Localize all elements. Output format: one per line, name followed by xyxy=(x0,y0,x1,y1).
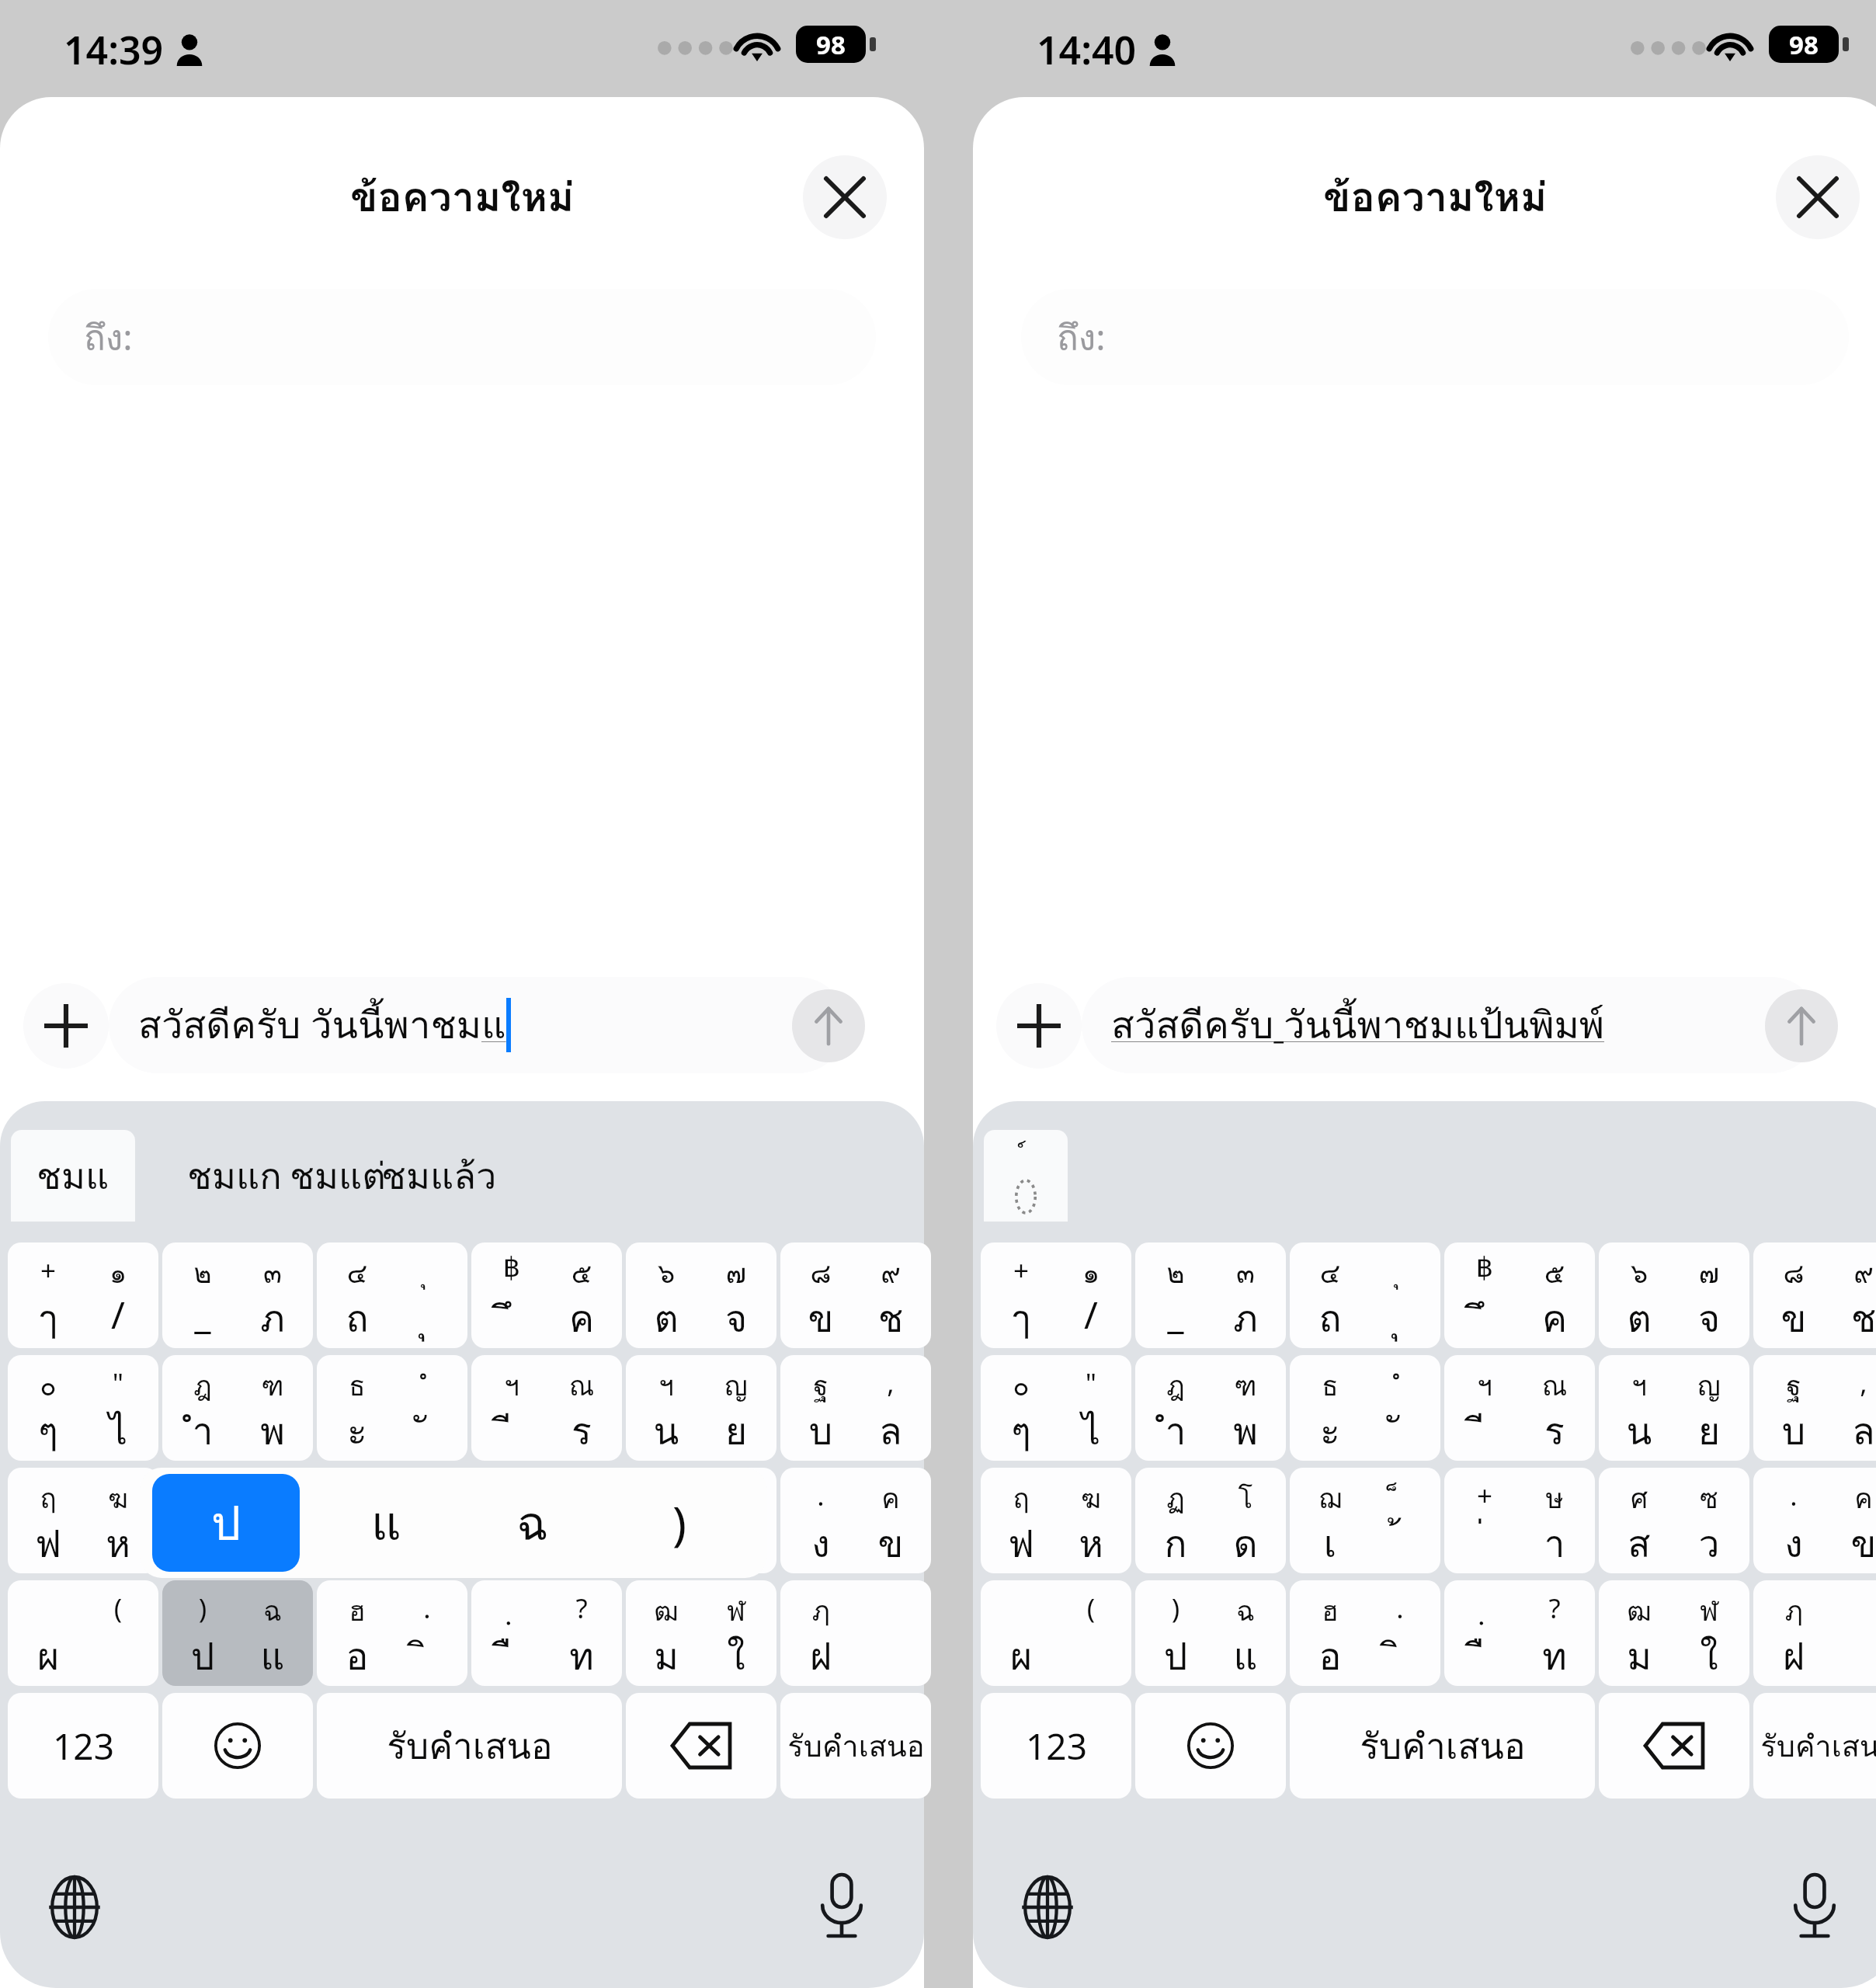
staticText: ๓ xyxy=(1217,1252,1274,1295)
button[interactable]: ฐ xyxy=(1753,1355,1876,1461)
button[interactable]: ์ xyxy=(984,1130,1068,1222)
button[interactable] xyxy=(162,1468,313,1573)
button[interactable]: ๘ xyxy=(1753,1242,1876,1348)
button[interactable]: Add attachment xyxy=(23,983,109,1069)
button[interactable]: Emoji xyxy=(1135,1693,1286,1799)
staticText: า xyxy=(1526,1514,1583,1573)
button[interactable]: รับคำเสนอ xyxy=(317,1693,622,1799)
button[interactable]: ๘ xyxy=(780,1242,931,1348)
button[interactable]: ฤ xyxy=(981,1468,1131,1573)
button[interactable]: ฐ xyxy=(780,1355,931,1461)
button[interactable]: ฎ xyxy=(1135,1355,1286,1461)
button[interactable]: ฯ xyxy=(626,1355,776,1461)
button[interactable]: ฿ xyxy=(1444,1242,1595,1348)
button[interactable]: ๐ xyxy=(981,1355,1131,1461)
button[interactable] xyxy=(471,1468,622,1573)
button[interactable]: + xyxy=(981,1242,1131,1348)
staticText: ด xyxy=(1217,1514,1274,1573)
staticText: ๓ xyxy=(244,1252,301,1295)
button[interactable]: ) xyxy=(162,1580,313,1686)
button[interactable]: ๔ xyxy=(317,1242,467,1348)
staticText: 123 xyxy=(1026,1722,1087,1771)
button[interactable]: ๖ xyxy=(1599,1242,1749,1348)
button[interactable]: ฯ xyxy=(1599,1355,1749,1461)
button[interactable]: ฦ xyxy=(780,1580,931,1686)
button[interactable]: ๔ xyxy=(1290,1242,1440,1348)
staticText: ญ xyxy=(707,1364,765,1408)
button[interactable]: ฮ xyxy=(1290,1580,1440,1686)
button[interactable]: ฺ xyxy=(1444,1580,1595,1686)
button[interactable]: ชมแล้ว xyxy=(369,1130,509,1222)
staticText: ๆ xyxy=(992,1402,1050,1461)
staticText: น xyxy=(1610,1402,1668,1461)
button[interactable] xyxy=(626,1468,776,1573)
button[interactable]: . xyxy=(1753,1468,1876,1573)
staticText: ื xyxy=(483,1627,540,1686)
button[interactable]: ฯ xyxy=(471,1355,622,1461)
button[interactable]: ฌ xyxy=(1290,1468,1440,1573)
button[interactable]: สวัสดีครับ วันนี้พาชมแป้นพิมพ์ xyxy=(1082,977,1819,1073)
staticText: ุ xyxy=(1371,1252,1429,1295)
button[interactable]: ฒ xyxy=(626,1580,776,1686)
button[interactable]: ธ xyxy=(317,1355,467,1461)
button[interactable]: ป xyxy=(152,1474,300,1572)
button[interactable]: Emoji xyxy=(162,1693,313,1799)
button[interactable]: Change keyboard xyxy=(31,1864,118,1951)
button[interactable]: ชมแก xyxy=(165,1130,304,1222)
button[interactable]: Close xyxy=(1776,155,1860,239)
button[interactable]: ธ xyxy=(1290,1355,1440,1461)
button[interactable]: ) xyxy=(1135,1580,1286,1686)
button[interactable]: ฦ xyxy=(1753,1580,1876,1686)
button[interactable]: ฎ xyxy=(162,1355,313,1461)
button[interactable]: 123 xyxy=(981,1693,1131,1799)
button[interactable]: สวัสดีครับ วันนี้พาชม xyxy=(109,977,846,1073)
button[interactable]: ๖ xyxy=(626,1242,776,1348)
staticText: ฺ xyxy=(1456,1590,1513,1633)
button[interactable]: Dictation xyxy=(1771,1864,1858,1951)
button[interactable]: รับคำเสนอ xyxy=(1753,1693,1876,1799)
button[interactable]: Close xyxy=(803,155,887,239)
button[interactable]: แ xyxy=(320,1474,452,1572)
button[interactable]: ๒ xyxy=(1135,1242,1286,1348)
button[interactable]: Delete xyxy=(626,1693,776,1799)
button[interactable]: ๒ xyxy=(162,1242,313,1348)
staticText: ฝ xyxy=(792,1627,849,1686)
staticText: ใ xyxy=(1680,1627,1738,1686)
button[interactable]: ฮ xyxy=(317,1580,467,1686)
button[interactable]: Add attachment xyxy=(996,983,1082,1069)
button[interactable]: ฯ xyxy=(1444,1355,1595,1461)
button[interactable]: ( xyxy=(981,1580,1131,1686)
button[interactable]: ฿ xyxy=(471,1242,622,1348)
button[interactable]: ๐ xyxy=(8,1355,158,1461)
button[interactable]: ( xyxy=(8,1580,158,1686)
button[interactable]: Delete xyxy=(1599,1693,1749,1799)
staticText: ุ xyxy=(398,1252,456,1295)
button[interactable]: รับคำเสนอ xyxy=(780,1693,931,1799)
button[interactable]: ชมแ xyxy=(11,1130,135,1222)
button[interactable]: + xyxy=(1444,1468,1595,1573)
button[interactable]: Change keyboard xyxy=(1004,1864,1091,1951)
button[interactable]: . xyxy=(780,1468,931,1573)
button[interactable]: ชมแต่ xyxy=(268,1130,408,1222)
button[interactable]: 123 xyxy=(8,1693,158,1799)
button[interactable]: ฏ xyxy=(1135,1468,1286,1573)
button[interactable] xyxy=(317,1468,467,1573)
button[interactable]: + xyxy=(8,1242,158,1348)
button[interactable]: ศ xyxy=(1599,1468,1749,1573)
staticText: ภ xyxy=(244,1289,301,1348)
button[interactable]: Send xyxy=(1765,989,1838,1062)
button[interactable]: ฒ xyxy=(1599,1580,1749,1686)
button[interactable]: ถึง: xyxy=(48,289,876,385)
button[interactable]: ฉ xyxy=(466,1474,598,1572)
button[interactable]: รับคำเสนอ xyxy=(1290,1693,1595,1799)
staticText: ฐ xyxy=(792,1364,849,1408)
button[interactable]: ฺ xyxy=(471,1580,622,1686)
button[interactable]: ฤ xyxy=(8,1468,158,1573)
staticText: ง xyxy=(792,1514,849,1573)
button[interactable]: ) xyxy=(613,1474,745,1572)
button[interactable]: ถึง: xyxy=(1021,289,1849,385)
staticText: ฤ xyxy=(992,1477,1050,1521)
button[interactable]: Send xyxy=(792,989,865,1062)
button[interactable]: Dictation xyxy=(798,1864,885,1951)
